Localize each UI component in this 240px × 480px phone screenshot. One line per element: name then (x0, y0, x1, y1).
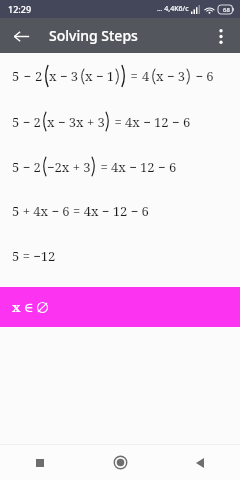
staticText: − 6 (192, 67, 214, 85)
staticText: 68 (223, 6, 230, 14)
staticText: 2 (35, 67, 43, 85)
button[interactable]: Back (4, 19, 38, 53)
staticText: = (127, 67, 142, 85)
staticText: − (20, 67, 35, 85)
button[interactable]: Recents (0, 445, 80, 480)
staticText: 5 + 4x − 6 = 4x − 12 − 6 (12, 202, 149, 220)
staticText: Solving Steps (49, 26, 138, 45)
staticText: x (12, 298, 21, 316)
staticText: = 4x − 12 − 6 (111, 113, 191, 131)
button[interactable]: More options (204, 19, 238, 53)
staticText: 4 (142, 67, 150, 85)
staticText: … 4,4K6/c (157, 4, 189, 14)
staticText: ∈ (24, 300, 34, 315)
staticText: x − 1 (85, 67, 115, 85)
staticText: 5 − 2 (12, 158, 41, 176)
staticText: 5 (12, 67, 20, 85)
staticText: x − 3 (49, 67, 79, 85)
button[interactable]: Home (80, 445, 160, 480)
staticText: x − 3x + 3 (47, 113, 105, 131)
staticText: 12:29 (8, 3, 32, 15)
staticText: −2x + 3 (47, 158, 91, 176)
staticText: = 4x − 12 − 6 (97, 158, 177, 176)
button[interactable]: Back (160, 445, 240, 480)
staticText: 5 − 2 (12, 113, 41, 131)
staticText: 5 = −12 (12, 247, 56, 265)
staticText: x − 3 (156, 67, 186, 85)
button[interactable]: x (0, 287, 240, 327)
